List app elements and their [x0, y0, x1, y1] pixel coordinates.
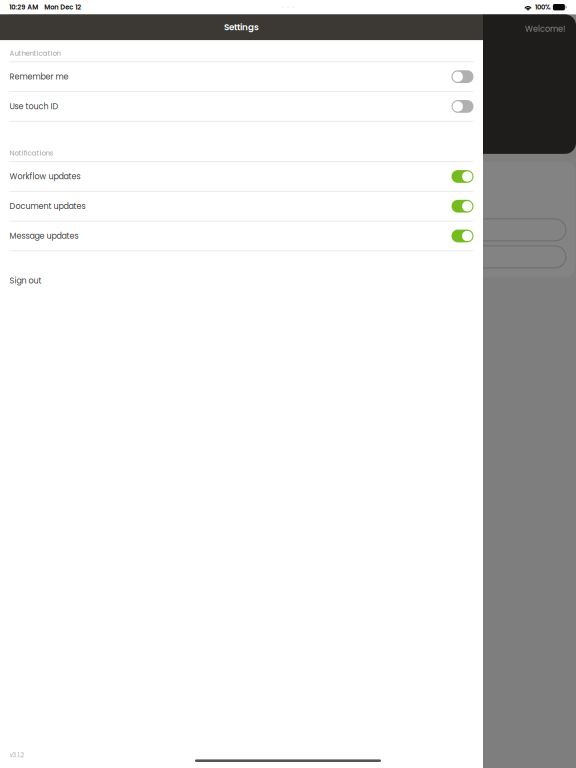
button[interactable]: Document updates [0, 192, 483, 221]
staticText: Authentication [9, 48, 60, 58]
button[interactable]: Message updates [0, 221, 483, 250]
staticText: Mon Dec 12 [44, 2, 81, 12]
staticText: Document updates [9, 201, 85, 212]
button[interactable]: Use touch ID [0, 92, 483, 121]
staticText: Remember me [9, 71, 68, 82]
button[interactable]: Remember me [0, 62, 483, 91]
staticText: Settings [224, 21, 259, 33]
staticText: Notifications [9, 148, 53, 158]
staticText: 10:29 AM [9, 2, 38, 12]
staticText: Welcome! [525, 23, 565, 34]
staticText: 100% [535, 2, 551, 12]
staticText: Sign out [9, 275, 41, 286]
staticText: v3.1.2 [9, 751, 24, 759]
staticText: Workflow updates [9, 171, 80, 182]
staticText: Message updates [9, 230, 78, 242]
button[interactable]: Sign out [0, 266, 483, 295]
button[interactable]: Workflow updates [0, 162, 483, 191]
staticText: Use touch ID [9, 101, 58, 112]
